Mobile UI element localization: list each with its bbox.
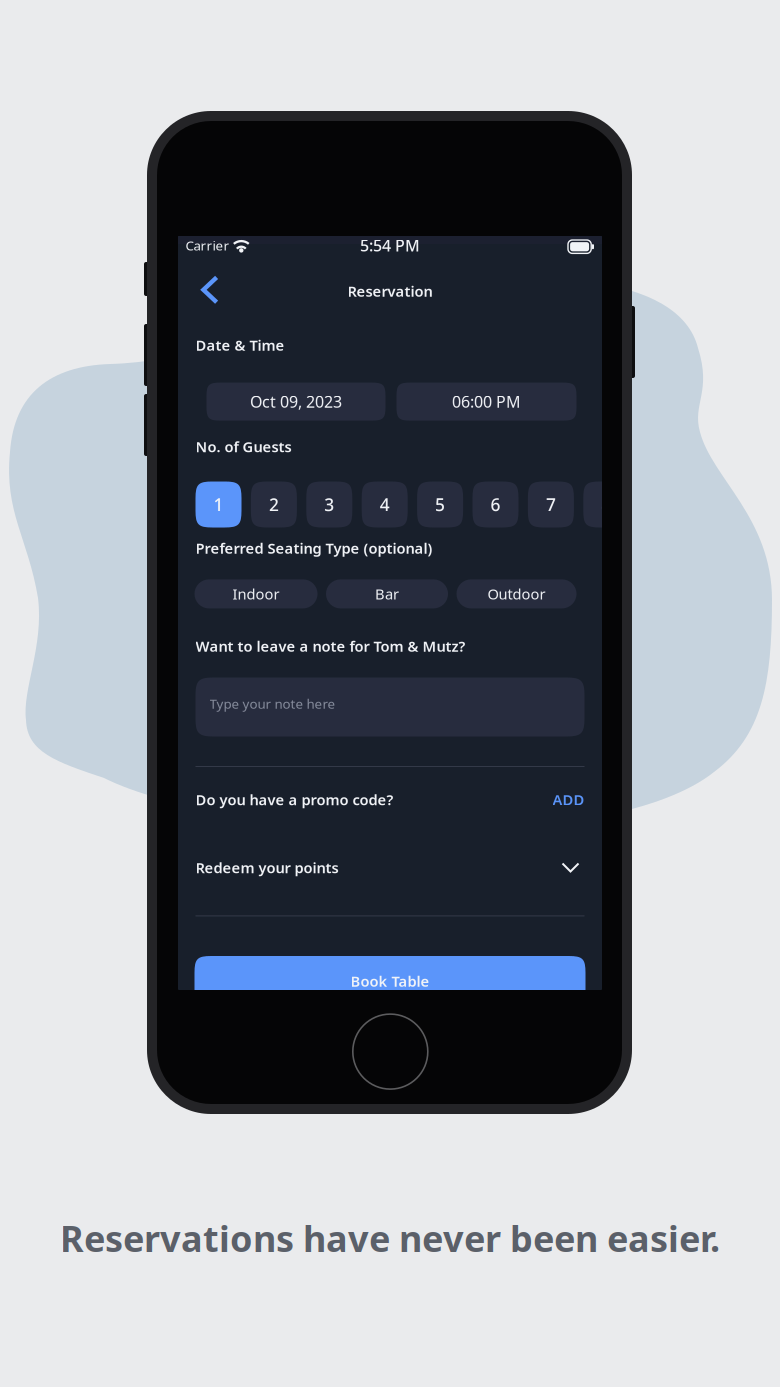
button[interactable]: 8 xyxy=(583,481,629,527)
staticText: Reservations have never been easier. xyxy=(60,1214,720,1262)
button[interactable]: 7 xyxy=(528,481,574,527)
button[interactable]: ADD xyxy=(552,790,584,809)
staticText: Preferred Seating Type (optional) xyxy=(195,538,432,558)
staticText: 6 xyxy=(490,493,500,516)
staticText: 5:54 PM xyxy=(360,235,420,256)
staticText: 06:00 PM xyxy=(452,391,521,412)
staticText: Do you have a promo code? xyxy=(195,790,393,809)
staticText: Oct 09, 2023 xyxy=(250,391,342,412)
button[interactable]: Outdoor xyxy=(456,579,576,608)
staticText: 3 xyxy=(324,493,334,516)
staticText: Book Table xyxy=(350,971,429,991)
staticText: 7 xyxy=(546,493,556,516)
staticText: Indoor xyxy=(232,584,279,604)
staticText: Want to leave a note for Tom & Mutz? xyxy=(195,636,465,656)
staticText: 1 xyxy=(213,493,223,516)
staticText: 4 xyxy=(380,493,390,516)
button[interactable]: Bar xyxy=(326,579,448,608)
button[interactable]: 3 xyxy=(306,481,352,527)
staticText: Outdoor xyxy=(487,584,545,604)
staticText: Reservation xyxy=(347,281,432,301)
button[interactable]: Oct 09, 2023 xyxy=(206,383,385,421)
button[interactable]: 1 xyxy=(195,481,241,527)
button[interactable]: Book Table xyxy=(194,956,585,1006)
staticText: Date & Time xyxy=(195,335,284,355)
staticText: 2 xyxy=(269,493,279,516)
button[interactable]: 5 xyxy=(417,481,463,527)
button[interactable]: 2 xyxy=(251,481,297,527)
button[interactable]: Expand redeem your points xyxy=(556,857,584,877)
button[interactable]: 4 xyxy=(362,481,408,527)
staticText: 8 xyxy=(601,493,611,516)
staticText: Bar xyxy=(375,584,399,604)
staticText: ADD xyxy=(552,790,584,809)
button[interactable]: Indoor xyxy=(194,579,317,608)
button[interactable]: Back xyxy=(188,271,232,309)
button[interactable]: 6 xyxy=(472,481,518,527)
staticText: No. of Guests xyxy=(195,437,291,456)
button[interactable]: Type your note here xyxy=(195,677,584,736)
staticText: Carrier xyxy=(186,236,230,254)
staticText: Type your note here xyxy=(209,695,335,712)
button[interactable]: 06:00 PM xyxy=(396,383,576,421)
staticText: 5 xyxy=(435,493,445,516)
staticText: Redeem your points xyxy=(195,858,338,877)
